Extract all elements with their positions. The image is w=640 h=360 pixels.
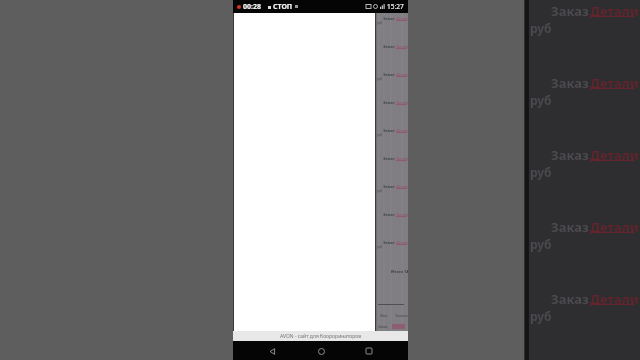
button[interactable]: [375, 237, 408, 248]
button[interactable]: [375, 209, 408, 220]
staticText: Заказать: [395, 313, 408, 318]
staticText: Детали: [396, 212, 408, 217]
staticText: Детали: [396, 16, 408, 21]
button[interactable]: Заказ: [551, 2, 639, 20]
staticText: Детали: [396, 72, 408, 77]
staticText: 15:27: [387, 2, 404, 11]
button[interactable]: AVON - сайт для Коороринаторов: [233, 331, 408, 341]
staticText: Детали: [396, 44, 408, 49]
button[interactable]: [375, 125, 408, 136]
button[interactable]: [375, 153, 408, 164]
staticText: Детали: [590, 290, 639, 308]
staticText: Заказ: [383, 156, 395, 161]
staticText: Заказ: [383, 16, 395, 21]
button[interactable]: [375, 69, 408, 80]
staticText: Детали: [396, 156, 408, 161]
staticText: Заказ: [383, 72, 395, 77]
staticText: Заказ: [383, 184, 395, 189]
staticText: Детали: [396, 100, 408, 105]
staticText: руб: [377, 245, 383, 249]
staticText: руб: [530, 92, 552, 108]
staticText: Детали: [590, 2, 639, 20]
button[interactable]: Заказ: [551, 146, 639, 164]
button[interactable]: СТОП: [268, 2, 293, 12]
button[interactable]: [375, 97, 408, 108]
staticText: руб: [530, 308, 552, 324]
staticText: Заказ: [383, 240, 395, 245]
staticText: руб: [377, 77, 383, 81]
button[interactable]: Back: [263, 342, 281, 360]
staticText: Заказ: [383, 212, 395, 217]
staticText: Детали: [590, 218, 639, 236]
button[interactable]: Заказ: [551, 218, 639, 236]
staticText: Детали: [396, 240, 408, 245]
staticText: СТОП: [273, 2, 293, 12]
staticText: руб: [377, 21, 383, 25]
button[interactable]: [375, 13, 408, 24]
staticText: Детали: [396, 128, 408, 133]
staticText: 00:28: [243, 2, 261, 12]
staticText: Заказ: [383, 128, 395, 133]
button[interactable]: Заказ: [551, 74, 639, 92]
staticText: Итого 14: [391, 269, 408, 274]
staticText: Заказ: [551, 290, 589, 308]
button[interactable]: Заказ: [551, 290, 639, 308]
button[interactable]: Home: [312, 342, 330, 360]
staticText: Заказ: [551, 2, 589, 20]
staticText: руб: [530, 20, 552, 36]
staticText: Заказ: [383, 44, 395, 49]
staticText: руб: [377, 133, 383, 137]
staticText: руб: [530, 236, 552, 252]
staticText: Заказ: [551, 146, 589, 164]
staticText: Заказ: [551, 218, 589, 236]
staticText: Детали: [590, 146, 639, 164]
staticText: Детали: [396, 184, 408, 189]
button[interactable]: Итого 14: [391, 269, 408, 274]
staticText: AVON - сайт для Коороринаторов: [280, 333, 362, 340]
button[interactable]: Заказ: [378, 324, 405, 329]
button[interactable]: Имя: [380, 313, 408, 318]
staticText: Заказ: [383, 100, 395, 105]
button[interactable]: [375, 41, 408, 52]
staticText: Детали: [590, 74, 639, 92]
staticText: руб: [530, 164, 552, 180]
staticText: Заказ: [551, 74, 589, 92]
staticText: Заказ: [378, 324, 388, 329]
button[interactable]: [375, 181, 408, 192]
staticText: Имя: [380, 313, 388, 318]
staticText: руб: [377, 189, 383, 193]
button[interactable]: Recent apps: [360, 342, 378, 360]
